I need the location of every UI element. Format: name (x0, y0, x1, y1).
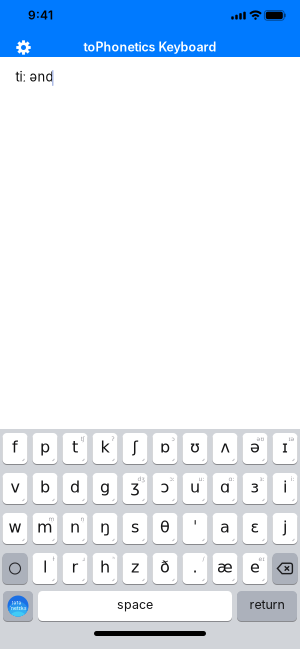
staticText: k (100, 438, 109, 456)
staticText: b (40, 478, 50, 496)
staticText: ɑ (220, 478, 230, 496)
staticText: dʒ (137, 475, 144, 482)
staticText: təfə (11, 600, 21, 606)
staticText: ʌ (220, 438, 229, 456)
button[interactable]: θ (152, 513, 177, 544)
staticText: ɜ (250, 478, 259, 496)
staticText: s (131, 518, 139, 536)
staticText: ɪə (288, 435, 294, 442)
staticText: θ (160, 518, 170, 536)
staticText: a (220, 518, 230, 536)
staticText: m (37, 518, 53, 536)
staticText: eɪ (258, 555, 264, 562)
button[interactable]: ɪ (272, 433, 297, 464)
button[interactable]: h (92, 553, 117, 584)
staticText: u (190, 478, 200, 496)
button[interactable]: g (92, 473, 117, 504)
button[interactable]: æ (212, 553, 237, 584)
button[interactable]: Shift (2, 553, 27, 584)
staticText: ʰ (112, 555, 114, 562)
staticText: / (202, 555, 204, 562)
staticText: ɫ (52, 555, 54, 562)
button[interactable]: ʒ (122, 473, 147, 504)
button[interactable]: ŋ (92, 513, 117, 544)
staticText: t (72, 438, 78, 456)
staticText: ɔ (160, 478, 169, 496)
button[interactable]: ɔ (152, 473, 177, 504)
button[interactable]: w (2, 513, 27, 544)
staticText: . (192, 558, 197, 576)
button[interactable]: . (182, 553, 207, 584)
button[interactable]: ˈ (182, 513, 207, 544)
staticText: əʊ (256, 435, 264, 442)
button[interactable]: l (32, 553, 57, 584)
button[interactable]: v (2, 473, 27, 504)
button[interactable]: p (32, 433, 57, 464)
button[interactable]: ʊ (182, 433, 207, 464)
button[interactable]: ɜ (242, 473, 267, 504)
button[interactable]: ʃ (122, 433, 147, 464)
staticText: æ (217, 558, 233, 576)
button[interactable]: u (182, 473, 207, 504)
staticText: ʊ (190, 438, 200, 456)
staticText: toPhonetics Keyboard (83, 39, 216, 54)
button[interactable]: a (212, 513, 237, 544)
button[interactable]: Delete (272, 553, 297, 584)
button[interactable]: ð (152, 553, 177, 584)
button[interactable]: ə (242, 433, 267, 464)
staticText: h (100, 558, 110, 576)
staticText: i (283, 478, 287, 496)
button[interactable]: i (272, 473, 297, 504)
staticText: ˈnetɪks (10, 605, 27, 611)
staticText: iː (290, 475, 294, 482)
staticText: ɔː (169, 475, 174, 482)
button[interactable]: Settings (10, 34, 36, 60)
staticText: f (12, 438, 18, 456)
staticText: tʃ (80, 435, 84, 442)
staticText: ð (160, 558, 170, 576)
button[interactable]: k (92, 433, 117, 464)
staticText: ɔ (171, 435, 174, 442)
staticText: ŋ (100, 518, 110, 536)
staticText: v (10, 478, 19, 496)
button[interactable]: f (2, 433, 27, 464)
button[interactable]: s (122, 513, 147, 544)
staticText: l (43, 558, 47, 576)
staticText: ˈ (193, 518, 197, 536)
button[interactable]: j (272, 513, 297, 544)
button[interactable]: m (32, 513, 57, 544)
button[interactable]: Return (237, 591, 297, 621)
staticText: p (40, 438, 50, 456)
staticText: ʒ (130, 478, 139, 496)
staticText: g (100, 478, 110, 496)
staticText: w (8, 518, 21, 536)
button[interactable]: d (62, 473, 87, 504)
staticText: e (250, 558, 260, 576)
staticText: return (249, 597, 284, 612)
staticText: ɑː (228, 475, 234, 482)
button[interactable]: b (32, 473, 57, 504)
button[interactable]: ɑ (212, 473, 237, 504)
staticText: j (283, 518, 287, 536)
button[interactable]: n (62, 513, 87, 544)
staticText: 9:41 (28, 8, 53, 22)
button[interactable]: ɛ (242, 513, 267, 544)
button[interactable]: r (62, 553, 87, 584)
staticText: tiː ənd (15, 69, 53, 85)
staticText: d (70, 478, 80, 496)
staticText: ɹ (82, 555, 84, 562)
button[interactable]: z (122, 553, 147, 584)
staticText: ɛ (250, 518, 259, 536)
button[interactable]: Next keyboard (3, 591, 33, 621)
button[interactable]: ɒ (152, 433, 177, 464)
button[interactable]: space (38, 591, 232, 621)
staticText: ɜː (259, 475, 264, 482)
button[interactable]: ʌ (212, 433, 237, 464)
staticText: n (70, 518, 80, 536)
button[interactable]: t (62, 433, 87, 464)
staticText: space (117, 597, 153, 612)
button[interactable]: e (242, 553, 267, 584)
staticText: m̩ (48, 515, 54, 522)
staticText: ʔ (111, 435, 114, 442)
staticText: ʃ (132, 438, 137, 456)
